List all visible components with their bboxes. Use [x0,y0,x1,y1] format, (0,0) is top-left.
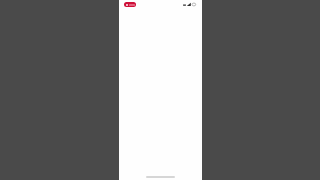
other: Mobile signal, Wi-Fi and battery status [183,3,197,6]
button[interactable]: Recording indicator [124,2,136,7]
